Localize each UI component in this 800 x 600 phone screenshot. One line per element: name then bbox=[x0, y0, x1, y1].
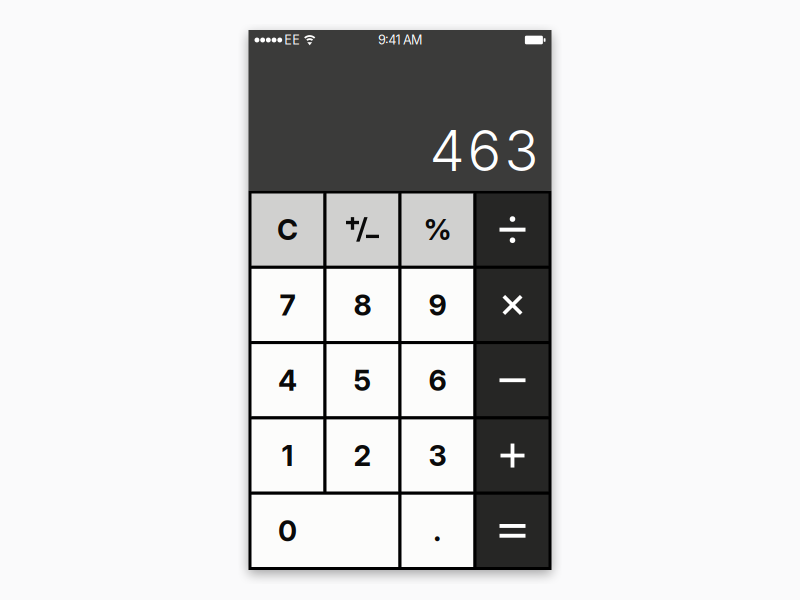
staticText: 463 bbox=[429, 117, 538, 184]
button[interactable]: Minus bbox=[476, 344, 548, 416]
button[interactable]: Plus minus bbox=[326, 193, 398, 266]
staticText: EE bbox=[284, 32, 300, 48]
button[interactable]: 7 bbox=[251, 269, 323, 341]
staticText: 9 bbox=[428, 288, 446, 322]
button[interactable]: C bbox=[251, 193, 323, 266]
button[interactable]: 8 bbox=[326, 269, 398, 341]
button[interactable]: % bbox=[401, 193, 473, 266]
button[interactable]: Divide bbox=[476, 193, 548, 266]
staticText: 6 bbox=[428, 363, 446, 398]
button[interactable]: 5 bbox=[326, 344, 398, 416]
button[interactable]: 3 bbox=[401, 419, 473, 492]
button[interactable]: 0 bbox=[251, 495, 398, 567]
staticText: 4 bbox=[278, 363, 297, 398]
staticText: 5 bbox=[353, 363, 371, 398]
button[interactable]: Multiply bbox=[476, 269, 548, 341]
staticText: C bbox=[277, 212, 298, 247]
button[interactable]: 1 bbox=[251, 419, 323, 492]
button[interactable]: 6 bbox=[401, 344, 473, 416]
staticText: 3 bbox=[428, 438, 446, 473]
staticText: 9:41 AM bbox=[378, 32, 422, 48]
staticText: 1 bbox=[281, 438, 293, 473]
staticText: 8 bbox=[353, 288, 371, 322]
button[interactable]: Plus bbox=[476, 419, 548, 492]
staticText: 0 bbox=[278, 513, 297, 548]
button[interactable]: 4 bbox=[251, 344, 323, 416]
button[interactable]: 2 bbox=[326, 419, 398, 492]
staticText: 7 bbox=[279, 288, 295, 322]
staticText: 2 bbox=[353, 438, 371, 473]
staticText: % bbox=[423, 212, 451, 247]
button[interactable]: Equals bbox=[476, 495, 548, 567]
button[interactable]: 9 bbox=[401, 269, 473, 341]
staticText: . bbox=[433, 513, 442, 548]
button[interactable]: . bbox=[401, 495, 473, 567]
